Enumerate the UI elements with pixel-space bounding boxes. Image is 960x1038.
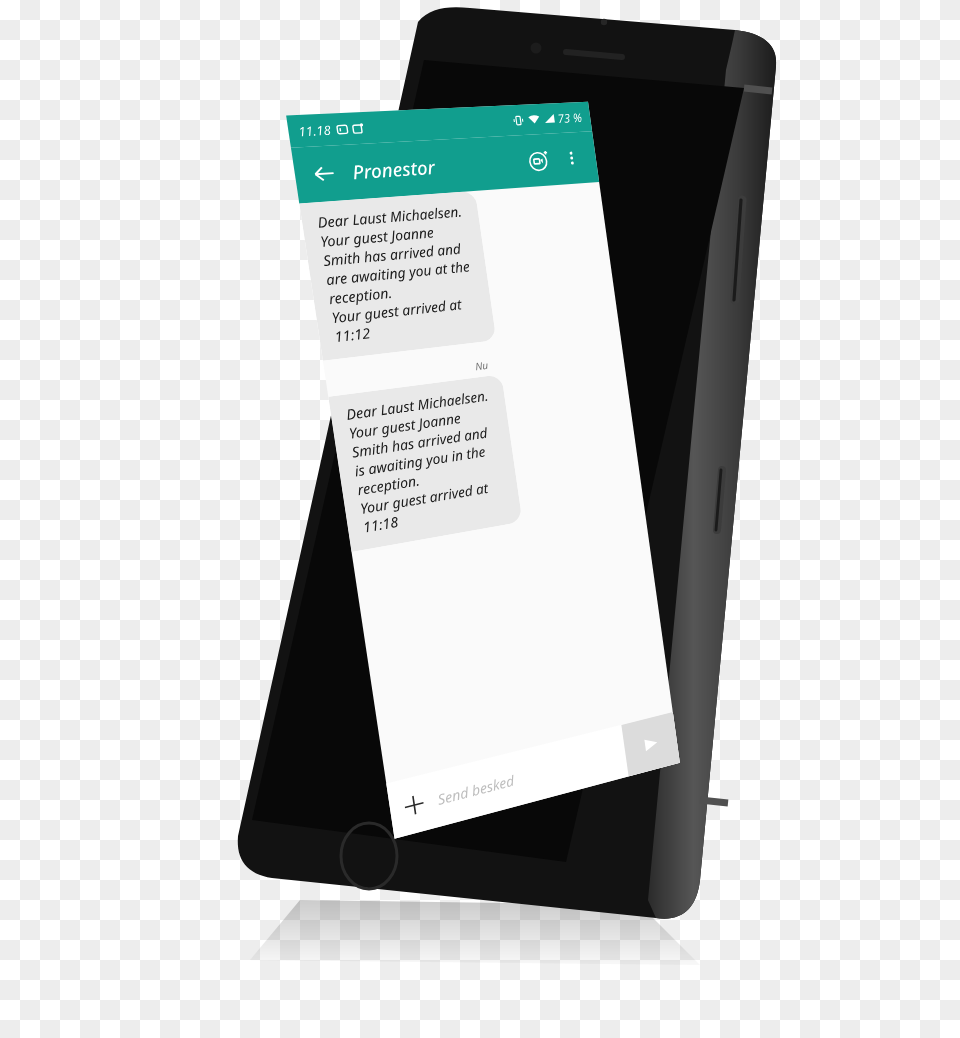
staticText: Dear Laust Michaelsen. Your guest Joanne…	[345, 386, 505, 537]
staticText: Nu	[474, 358, 489, 373]
button[interactable]: Dear Laust Michaelsen. Your guest Joanne…	[299, 191, 496, 361]
button[interactable]: Attach	[387, 776, 441, 835]
button[interactable]: Dear Laust Michaelsen. Your guest Joanne…	[328, 374, 522, 552]
staticText: Dear Laust Michaelsen. Your guest Joanne…	[316, 202, 479, 346]
button[interactable]: Back	[303, 155, 345, 193]
staticText: 73 %	[556, 109, 583, 126]
button[interactable]: Send	[621, 712, 680, 776]
staticText: Send besked	[436, 742, 626, 809]
staticText: 11.18	[297, 121, 332, 140]
staticText: Pronestor	[350, 154, 437, 186]
button[interactable]: More options	[555, 141, 589, 175]
button[interactable]: Start video call	[520, 142, 557, 178]
